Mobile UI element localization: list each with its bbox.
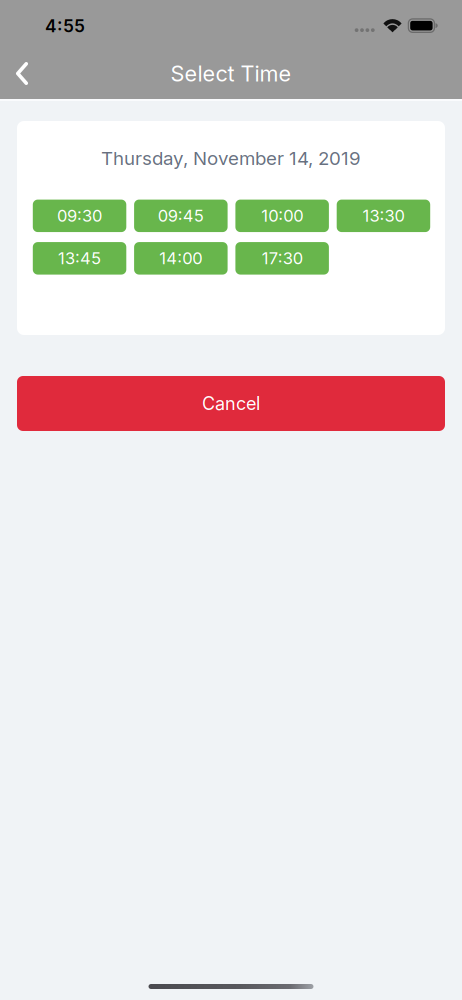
staticText: 14:00 xyxy=(159,248,202,268)
button[interactable]: 09:30 xyxy=(33,200,126,232)
staticText: 13:45 xyxy=(58,248,101,268)
button[interactable]: 17:30 xyxy=(235,242,329,275)
staticText: 13:30 xyxy=(362,206,404,226)
staticText: 09:30 xyxy=(57,206,102,226)
button[interactable]: 13:45 xyxy=(33,242,126,275)
staticText: 17:30 xyxy=(262,248,303,268)
button[interactable]: 14:00 xyxy=(134,242,228,275)
button[interactable]: 09:45 xyxy=(134,200,228,232)
staticText: 4:55 xyxy=(45,16,85,37)
button[interactable]: 13:30 xyxy=(337,200,430,232)
button[interactable]: 10:00 xyxy=(235,200,329,232)
staticText: Thursday, November 14, 2019 xyxy=(101,147,361,170)
staticText: Cancel xyxy=(202,393,260,414)
staticText: 09:45 xyxy=(158,206,204,226)
staticText: 10:00 xyxy=(261,206,303,226)
staticText: Select Time xyxy=(170,60,291,87)
button[interactable]: Back xyxy=(0,51,44,95)
button[interactable]: Cancel xyxy=(17,376,445,431)
